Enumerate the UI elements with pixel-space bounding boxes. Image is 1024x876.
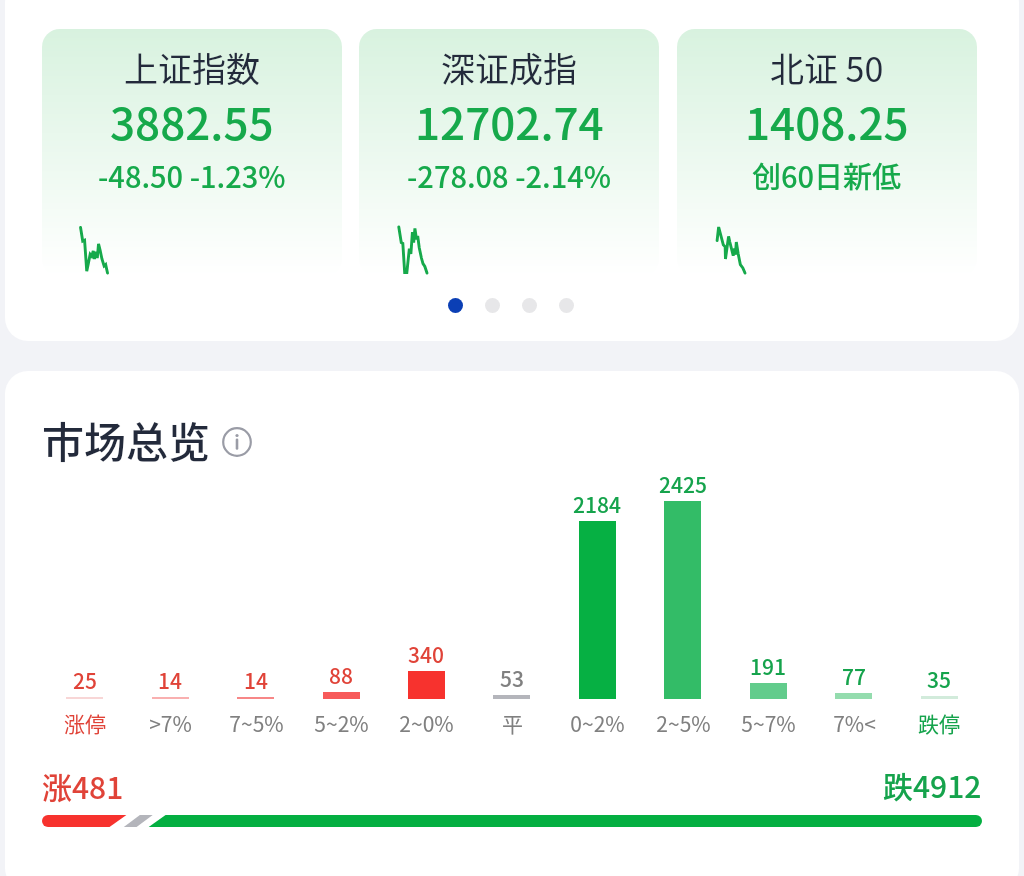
staticText: 创60日新低 (752, 154, 902, 196)
staticText: 340 (408, 639, 444, 669)
staticText: 25 (73, 665, 97, 695)
staticText: -48.50 -1.23% (98, 154, 286, 196)
button[interactable]: 北证 50 (677, 29, 977, 276)
button[interactable] (640, 470, 725, 740)
staticText: 191 (750, 651, 786, 681)
staticText: 深证成指 (441, 43, 577, 92)
staticText: >7% (149, 708, 192, 738)
button[interactable]: 上证指数 (42, 29, 342, 276)
staticText: 88 (329, 660, 353, 690)
button[interactable] (298, 470, 383, 740)
staticText: 77 (842, 661, 866, 691)
staticText: 2184 (573, 489, 621, 519)
staticText: 14 (244, 665, 268, 695)
button[interactable] (448, 298, 463, 313)
staticText: 3882.55 (110, 89, 274, 153)
staticText: 跌停 (918, 708, 960, 738)
button[interactable] (522, 298, 537, 313)
button[interactable] (469, 470, 554, 740)
button[interactable] (42, 470, 127, 740)
button[interactable]: 深证成指 (359, 29, 659, 276)
staticText: 1408.25 (745, 89, 909, 153)
staticText: 12702.74 (415, 89, 604, 153)
staticText: 上证指数 (124, 43, 260, 92)
staticText: 35 (927, 664, 951, 694)
staticText: 涨481 (42, 764, 124, 807)
button[interactable] (555, 470, 640, 740)
staticText: 0~2% (570, 708, 625, 738)
button[interactable] (213, 470, 298, 740)
staticText: 5~7% (741, 708, 796, 738)
button[interactable] (127, 470, 212, 740)
staticText: 市场总览 (42, 409, 211, 470)
button[interactable] (811, 470, 896, 740)
staticText: 2425 (659, 469, 707, 499)
button[interactable] (559, 298, 574, 313)
staticText: 14 (158, 665, 182, 695)
staticText: 7~5% (229, 708, 284, 738)
staticText: 7%< (833, 708, 876, 738)
button[interactable] (485, 298, 500, 313)
button[interactable]: Info (222, 427, 252, 457)
staticText: 涨停 (64, 708, 106, 738)
button[interactable] (726, 470, 811, 740)
button[interactable] (896, 470, 981, 740)
button[interactable] (384, 470, 469, 740)
staticText: 5~2% (314, 708, 369, 738)
staticText: 跌4912 (883, 763, 982, 806)
staticText: 2~5% (656, 708, 711, 738)
staticText: 平 (502, 708, 523, 738)
staticText: 北证 50 (770, 43, 884, 92)
staticText: 2~0% (399, 708, 454, 738)
staticText: -278.08 -2.14% (407, 154, 611, 196)
staticText: 53 (500, 663, 524, 693)
